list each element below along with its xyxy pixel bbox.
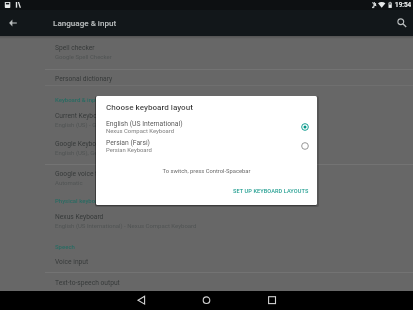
staticText: Google Spell Checker xyxy=(55,53,112,60)
staticText: Google voice typing xyxy=(55,170,114,178)
button[interactable] xyxy=(0,69,413,86)
staticText: Language & input xyxy=(53,18,117,27)
button[interactable]: Recent apps xyxy=(256,291,288,310)
staticText: English (US) - Google Keyboard xyxy=(55,121,138,128)
staticText: Automatic xyxy=(55,179,83,186)
button[interactable]: Persian (Farsi) xyxy=(297,138,313,154)
staticText: Nexus Keyboard xyxy=(55,213,104,221)
button[interactable]: Home xyxy=(191,291,223,310)
staticText: English (US International) xyxy=(106,120,183,128)
button[interactable] xyxy=(0,108,413,136)
button[interactable]: Back xyxy=(125,291,157,310)
staticText: SET UP KEYBOARD LAYOUTS xyxy=(233,188,309,195)
button[interactable] xyxy=(0,164,413,192)
staticText: English (US International) - Nexus Compa… xyxy=(55,222,197,229)
staticText: Choose keyboard layout xyxy=(106,102,193,111)
staticText: Google Keyboard xyxy=(55,140,106,148)
staticText: Persian Keyboard xyxy=(106,147,152,154)
button[interactable] xyxy=(0,272,413,290)
button[interactable]: Back xyxy=(5,15,21,31)
button[interactable]: English (US International) xyxy=(96,118,317,136)
staticText: Personal dictionary xyxy=(55,75,113,83)
staticText: Nexus Compact Keyboard xyxy=(106,128,174,135)
staticText: Current Keyboard xyxy=(55,112,107,120)
button[interactable]: SET UP KEYBOARD LAYOUTS xyxy=(232,186,310,197)
staticText: To switch, press Control-Spacebar xyxy=(96,168,317,175)
staticText: Voice input xyxy=(55,258,89,266)
button[interactable]: Search xyxy=(394,15,410,31)
staticText: Speech xyxy=(55,243,75,250)
button[interactable] xyxy=(0,209,413,236)
button[interactable]: Selected: English (US International) xyxy=(297,119,313,135)
button[interactable]: Persian (Farsi) xyxy=(96,137,317,155)
staticText: Physical keyboard xyxy=(55,197,104,204)
staticText: Persian (Farsi) xyxy=(106,139,150,147)
staticText: 19:54 xyxy=(395,1,412,9)
button[interactable] xyxy=(0,136,413,163)
staticText: Text-to-speech output xyxy=(55,279,120,287)
staticText: Spell checker xyxy=(55,44,95,52)
staticText: English (US), German, Spanish xyxy=(55,149,136,156)
staticText: Keyboard & input methods xyxy=(55,96,126,103)
